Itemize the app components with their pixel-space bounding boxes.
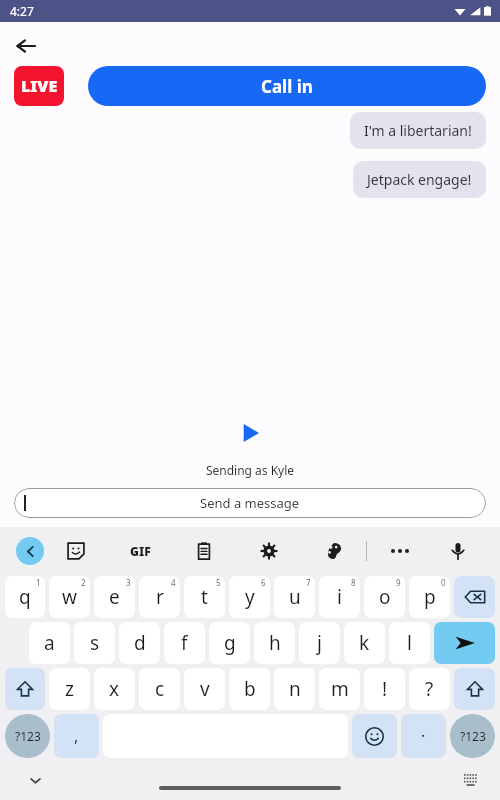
button[interactable]: ?123 (5, 714, 50, 758)
button[interactable]: Stickers (44, 527, 108, 574)
button[interactable]: Send a message (14, 488, 486, 518)
staticText: s (90, 630, 100, 656)
staticText: 7 (306, 577, 311, 588)
button[interactable]: w (49, 576, 90, 618)
button[interactable]: d (119, 622, 160, 664)
button[interactable]: I'm a libertarian! (350, 112, 486, 149)
staticText: · (421, 725, 426, 747)
staticText: 8 (351, 577, 356, 588)
staticText: Sending as Kyle (0, 462, 500, 478)
staticText: I'm a libertarian! (364, 121, 472, 140)
staticText: ?123 (460, 728, 486, 744)
button[interactable]: u (274, 576, 315, 618)
staticText: c (155, 676, 165, 702)
button[interactable]: Clipboard (172, 527, 236, 574)
staticText: v (200, 676, 210, 702)
staticText: Call in (261, 75, 313, 98)
staticText: Send a message (200, 494, 300, 512)
button[interactable]: Themes (301, 527, 366, 574)
button[interactable]: Shift (454, 668, 495, 710)
button[interactable]: Change keyboard (458, 767, 484, 793)
staticText: a (44, 630, 55, 656)
staticText: ! (382, 676, 388, 702)
button[interactable]: Shift (5, 668, 45, 710)
button[interactable]: v (184, 668, 225, 710)
button[interactable]: Back (8, 28, 44, 64)
button[interactable]: Collapse toolbar (16, 537, 44, 565)
button[interactable]: l (389, 622, 430, 664)
button[interactable]: Call in (88, 66, 486, 106)
button[interactable]: a (29, 622, 70, 664)
button[interactable]: r (139, 576, 180, 618)
button[interactable]: ? (409, 668, 450, 710)
button[interactable]: q (5, 576, 45, 618)
button[interactable]: Backspace (454, 576, 495, 618)
staticText: l (407, 630, 412, 656)
button[interactable]: ! (364, 668, 405, 710)
staticText: ?123 (15, 728, 41, 744)
button[interactable]: b (229, 668, 270, 710)
button[interactable]: c (139, 668, 180, 710)
button[interactable]: o (364, 576, 405, 618)
button[interactable]: Hide keyboard (22, 767, 48, 793)
staticText: j (317, 630, 322, 656)
button[interactable]: s (74, 622, 115, 664)
button[interactable]: h (254, 622, 295, 664)
staticText: 2 (81, 577, 86, 588)
button[interactable]: Jetpack engage! (353, 161, 486, 198)
button[interactable]: Settings (236, 527, 301, 574)
staticText: 6 (261, 577, 266, 588)
staticText: h (269, 630, 281, 656)
button[interactable]: Emoji (352, 714, 397, 758)
staticText: d (134, 630, 146, 656)
staticText: 4 (171, 577, 176, 588)
staticText: p (424, 584, 436, 610)
staticText: f (181, 630, 188, 656)
button[interactable]: Send (434, 622, 495, 664)
button[interactable]: z (49, 668, 90, 710)
button[interactable]: , (54, 714, 99, 758)
staticText: x (109, 676, 120, 702)
staticText: , (74, 725, 79, 747)
button[interactable]: Voice input (432, 527, 484, 574)
button[interactable]: y (229, 576, 270, 618)
staticText: e (109, 584, 120, 610)
staticText: b (244, 676, 256, 702)
staticText: g (224, 630, 236, 656)
button[interactable]: p (409, 576, 450, 618)
staticText: 0 (441, 577, 446, 588)
staticText: y (245, 584, 255, 610)
button[interactable]: GIF (108, 527, 172, 574)
button[interactable]: j (299, 622, 340, 664)
staticText: 3 (126, 577, 131, 588)
button[interactable]: g (209, 622, 250, 664)
staticText: o (379, 584, 391, 610)
staticText: z (65, 676, 74, 702)
button[interactable]: ?123 (450, 714, 495, 758)
staticText: k (359, 630, 370, 656)
staticText: i (337, 584, 342, 610)
button[interactable]: n (274, 668, 315, 710)
button[interactable]: k (344, 622, 385, 664)
button[interactable]: More options (367, 527, 432, 574)
button[interactable]: x (94, 668, 135, 710)
staticText: q (19, 584, 31, 610)
staticText: GIF (130, 543, 151, 559)
button[interactable]: m (319, 668, 360, 710)
button[interactable]: i (319, 576, 360, 618)
button[interactable]: t (184, 576, 225, 618)
staticText: 5 (216, 577, 221, 588)
button[interactable]: LIVE (14, 66, 64, 106)
button[interactable]: Play (233, 416, 267, 450)
button[interactable]: · (401, 714, 446, 758)
staticText: 9 (396, 577, 401, 588)
button[interactable]: e (94, 576, 135, 618)
staticText: n (289, 676, 301, 702)
staticText: 1 (36, 577, 41, 588)
staticText: ? (425, 676, 434, 702)
staticText: m (331, 676, 349, 702)
staticText: Jetpack engage! (367, 170, 472, 189)
staticText: t (201, 584, 208, 610)
button[interactable]: f (164, 622, 205, 664)
